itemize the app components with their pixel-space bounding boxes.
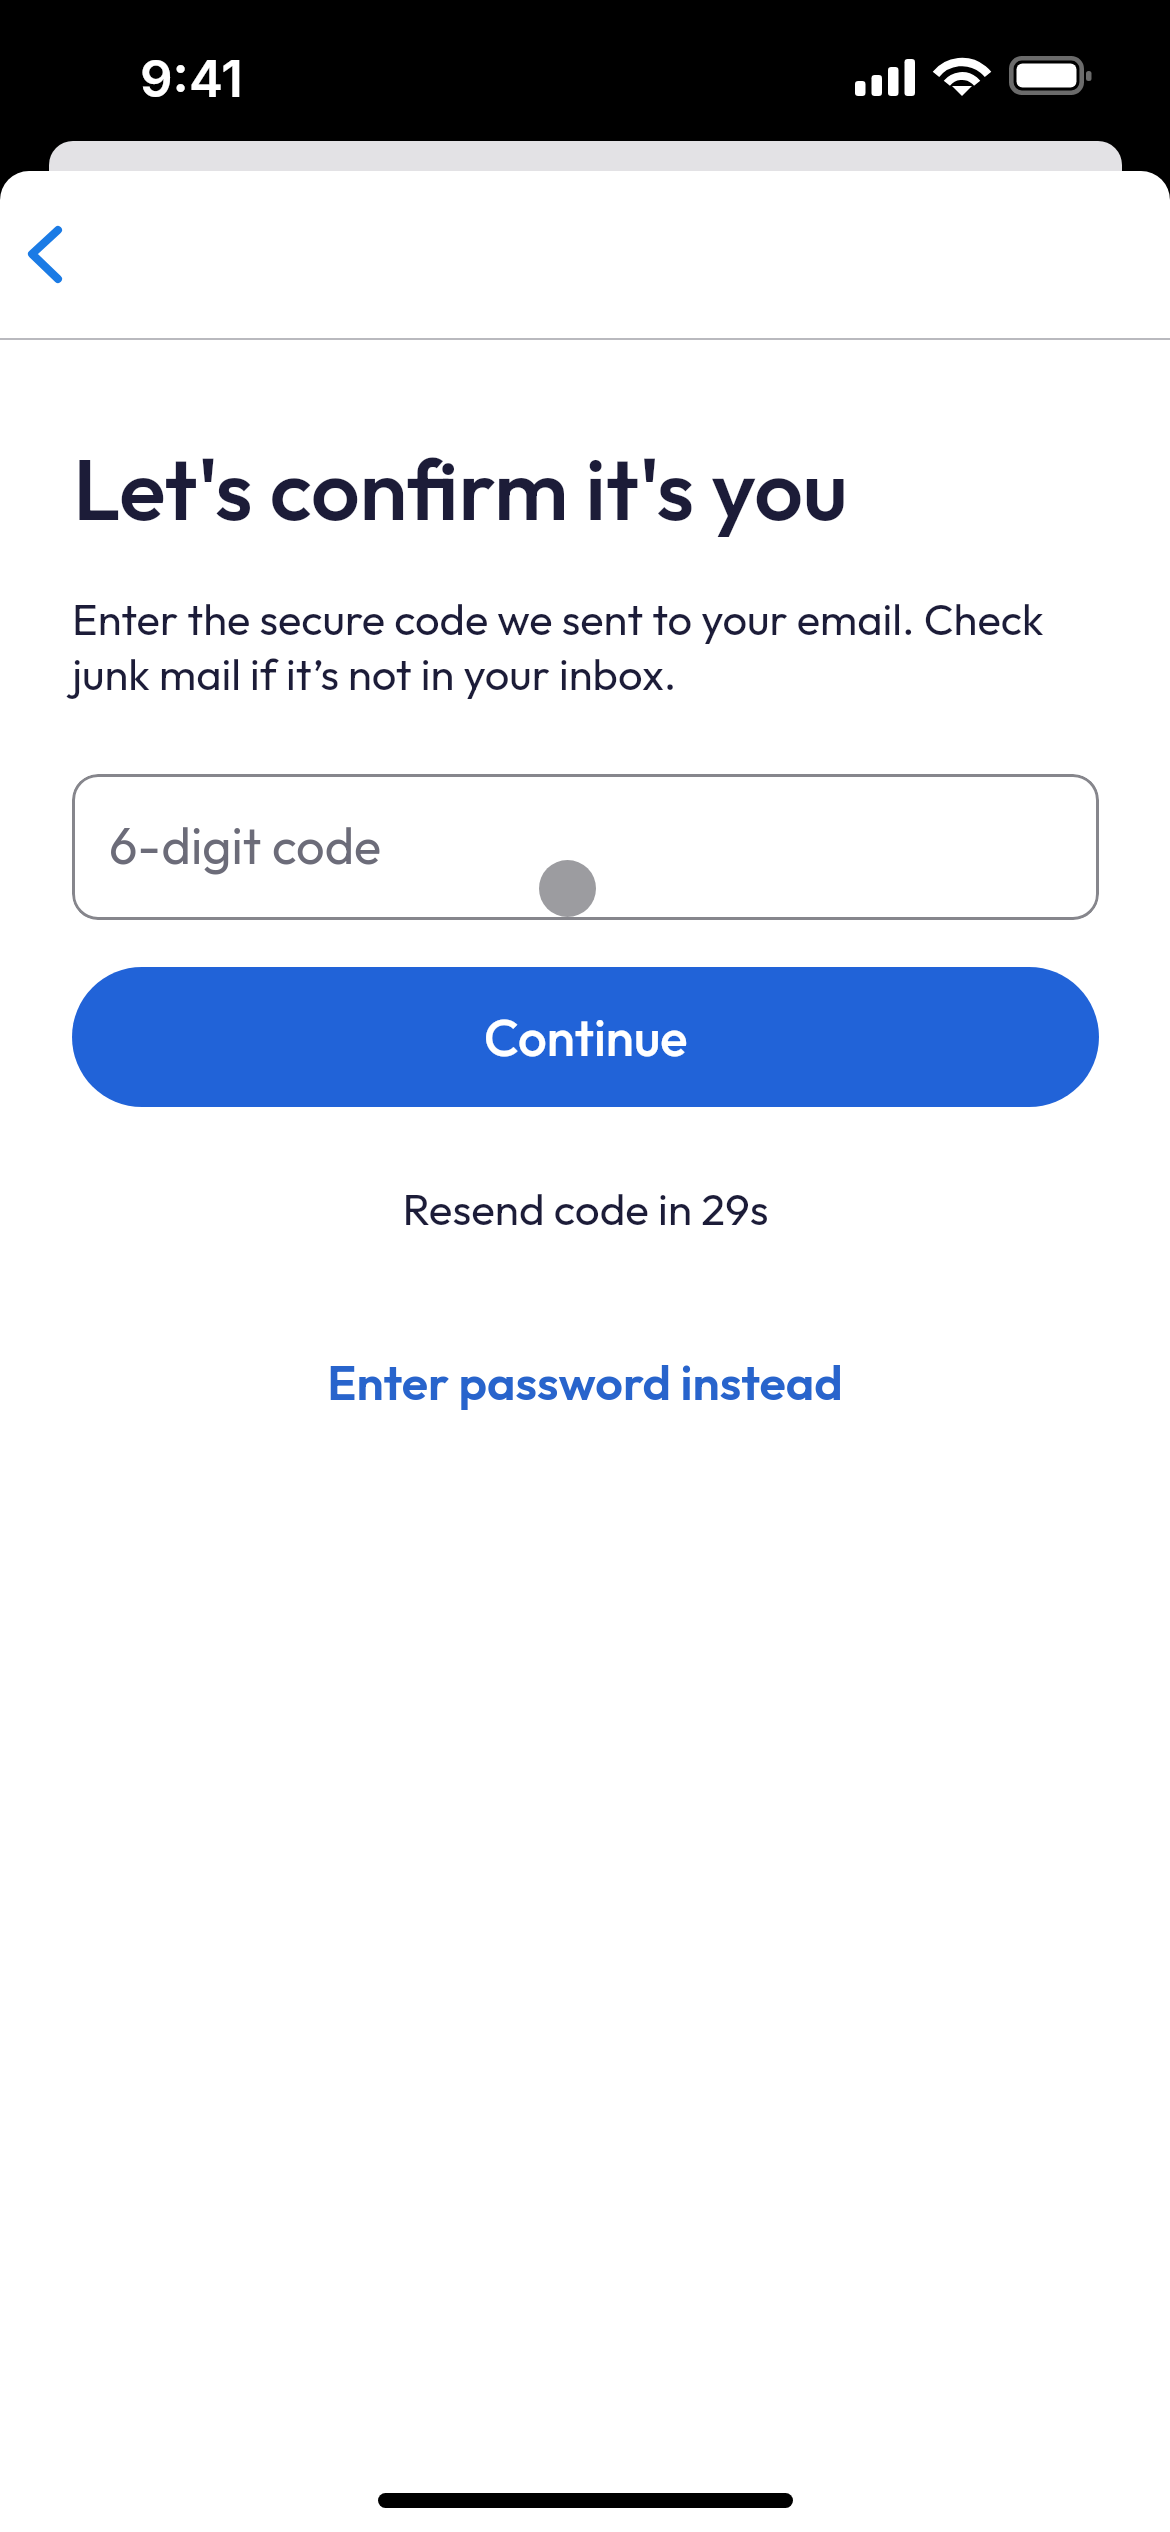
button[interactable]: 6-digit code	[72, 774, 1099, 920]
button[interactable]: Resend code in 29s	[378, 1175, 793, 1242]
staticText: 6-digit code	[109, 813, 382, 877]
staticText: 9:41	[140, 48, 243, 110]
button[interactable]: Enter password instead	[299, 1337, 871, 1426]
staticText: Enter password instead	[327, 1351, 843, 1412]
staticText: Enter the secure code we sent to your em…	[72, 591, 1082, 701]
button[interactable]: Back	[6, 193, 104, 301]
button[interactable]: Continue	[72, 967, 1099, 1107]
staticText: Continue	[484, 1005, 688, 1069]
staticText: Resend code in 29s	[402, 1181, 769, 1236]
staticText: Let's confirm it's you	[73, 434, 1093, 542]
